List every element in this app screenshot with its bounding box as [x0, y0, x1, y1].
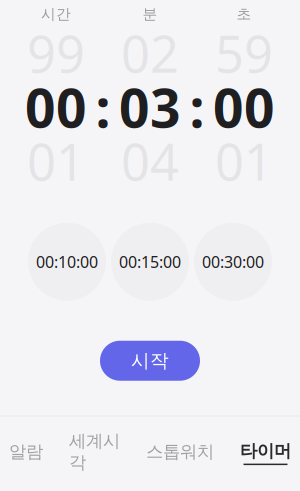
staticText: 01 — [27, 127, 85, 195]
staticText: 04 — [121, 127, 179, 195]
button[interactable]: 00:30:00 — [194, 223, 272, 301]
staticText: 59 — [215, 19, 273, 87]
staticText: 시간 — [41, 5, 71, 23]
button[interactable]: 세계시각 — [61, 424, 128, 481]
staticText: : — [189, 72, 204, 142]
button[interactable]: 00:10:00 — [28, 223, 106, 301]
staticText: 03 — [119, 72, 181, 142]
staticText: 00 — [213, 72, 275, 142]
button[interactable]: 알람 — [1, 435, 51, 470]
staticText: 00:15:00 — [119, 251, 181, 272]
staticText: 스톱워치 — [146, 441, 214, 462]
staticText: 세계시각 — [69, 430, 120, 473]
staticText: 99 — [27, 19, 85, 87]
staticText: 01 — [215, 127, 273, 195]
staticText: 알람 — [9, 441, 43, 462]
staticText: : — [95, 72, 110, 142]
button[interactable]: 00:15:00 — [111, 223, 189, 301]
staticText: 00:30:00 — [202, 251, 264, 272]
staticText: 분 — [142, 5, 157, 23]
staticText: 00:10:00 — [36, 251, 98, 272]
staticText: 00 — [25, 72, 87, 142]
button[interactable]: 스톱워치 — [138, 435, 222, 470]
staticText: 시작 — [131, 349, 169, 372]
staticText: : — [96, 127, 110, 195]
staticText: 초 — [236, 5, 251, 23]
button[interactable]: 시작 — [100, 341, 200, 381]
staticText: 타이머 — [240, 440, 291, 462]
staticText: 02 — [121, 19, 179, 87]
staticText: : — [190, 127, 204, 195]
button[interactable]: 타이머 — [232, 434, 299, 471]
